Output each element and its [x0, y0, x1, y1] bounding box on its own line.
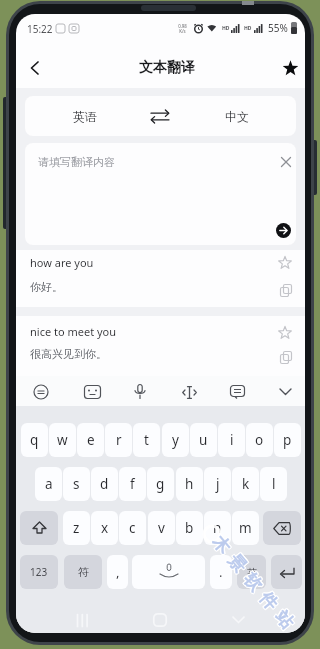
button[interactable]: . [210, 555, 232, 589]
button[interactable] [81, 381, 103, 403]
button[interactable]: r [105, 423, 132, 457]
button[interactable]: 123 [20, 555, 58, 589]
button[interactable]: j [204, 467, 231, 501]
button[interactable] [30, 381, 52, 403]
button[interactable]: g [147, 467, 174, 501]
button[interactable] [278, 349, 294, 365]
button[interactable]: l [260, 467, 287, 501]
staticText: z [73, 519, 80, 537]
staticText: 木景软件站 [207, 532, 302, 640]
staticText: s [73, 475, 80, 493]
staticText: 英语 [73, 109, 97, 124]
staticText: 木景软件站 [208, 530, 303, 638]
staticText: h [185, 475, 194, 493]
staticText: 0.98 K/s [178, 23, 187, 34]
staticText: u [199, 431, 208, 449]
button[interactable] [278, 282, 294, 298]
staticText: 木景软件站 [208, 533, 303, 641]
staticText: 木景软件站 [209, 532, 304, 640]
button[interactable] [132, 555, 205, 589]
button[interactable]: 英语 [55, 96, 115, 136]
staticText: how are you [30, 255, 94, 270]
button[interactable]: s [63, 467, 90, 501]
button[interactable] [263, 511, 301, 545]
staticText: f [130, 475, 135, 493]
button[interactable]: n [204, 511, 231, 545]
button[interactable] [70, 610, 94, 630]
button[interactable]: i [218, 423, 245, 457]
staticText: g [156, 475, 165, 493]
button[interactable]: d [91, 467, 118, 501]
button[interactable]: e [77, 423, 104, 457]
staticText: y [172, 431, 179, 449]
staticText: j [216, 475, 220, 493]
staticText: 木景软件站 [209, 532, 304, 639]
button[interactable] [277, 325, 293, 341]
button[interactable] [178, 381, 200, 403]
button[interactable]: p [274, 423, 301, 457]
button[interactable] [16, 250, 305, 307]
button[interactable] [276, 54, 304, 82]
button[interactable]: v [148, 511, 175, 545]
staticText: w [57, 431, 68, 449]
staticText: 很高兴见到你。 [30, 347, 107, 361]
button[interactable]: c [119, 511, 146, 545]
staticText: . [219, 563, 223, 581]
button[interactable] [25, 143, 296, 245]
button[interactable]: u [190, 423, 217, 457]
button[interactable] [146, 103, 174, 129]
button[interactable] [129, 381, 151, 403]
button[interactable]: m [232, 511, 259, 545]
staticText: 木景软件站 [208, 532, 303, 639]
button[interactable]: h [176, 467, 203, 501]
staticText: 你好。 [30, 280, 63, 294]
button[interactable]: 中文 [207, 96, 267, 136]
button[interactable]: q [21, 423, 48, 457]
button[interactable] [277, 255, 293, 271]
staticText: 123 [30, 565, 48, 579]
staticText: HD [244, 25, 252, 32]
staticText: b [185, 519, 194, 537]
staticText: 文本翻译 [139, 59, 195, 77]
button[interactable]: x [91, 511, 118, 545]
staticText: 木景软件站 [207, 531, 302, 639]
button[interactable] [226, 381, 248, 403]
staticText: d [100, 475, 109, 493]
staticText: , [116, 563, 120, 581]
staticText: r [116, 431, 122, 449]
staticText: k [242, 475, 250, 493]
button[interactable]: a [35, 467, 62, 501]
button[interactable]: 符 [64, 555, 102, 589]
button[interactable] [16, 316, 305, 376]
button[interactable] [22, 54, 48, 82]
button[interactable]: 英 [237, 555, 266, 589]
button[interactable]: t [133, 423, 160, 457]
staticText: a [45, 475, 53, 493]
button[interactable]: o [246, 423, 273, 457]
staticText: o [255, 431, 264, 449]
staticText: 英 [247, 566, 257, 579]
button[interactable] [274, 381, 296, 403]
staticText: 木景软件站 [206, 531, 302, 639]
button[interactable]: k [232, 467, 259, 501]
button[interactable] [275, 151, 297, 173]
button[interactable] [148, 609, 172, 631]
button[interactable]: b [176, 511, 203, 545]
button[interactable]: y [162, 423, 189, 457]
staticText: x [101, 519, 109, 537]
staticText: 木景软件站 [209, 531, 304, 639]
staticText: HD [222, 25, 230, 32]
button[interactable]: , [107, 555, 128, 589]
button[interactable]: f [119, 467, 146, 501]
button[interactable]: z [63, 511, 90, 545]
button[interactable] [271, 555, 302, 589]
staticText: nice to meet you [30, 324, 117, 339]
button[interactable]: w [49, 423, 76, 457]
staticText: 55% [268, 21, 288, 35]
button[interactable] [276, 223, 291, 238]
staticText: 请填写翻译内容 [38, 155, 115, 169]
staticText: p [283, 431, 292, 449]
staticText: c [129, 519, 136, 537]
button[interactable] [20, 511, 58, 545]
